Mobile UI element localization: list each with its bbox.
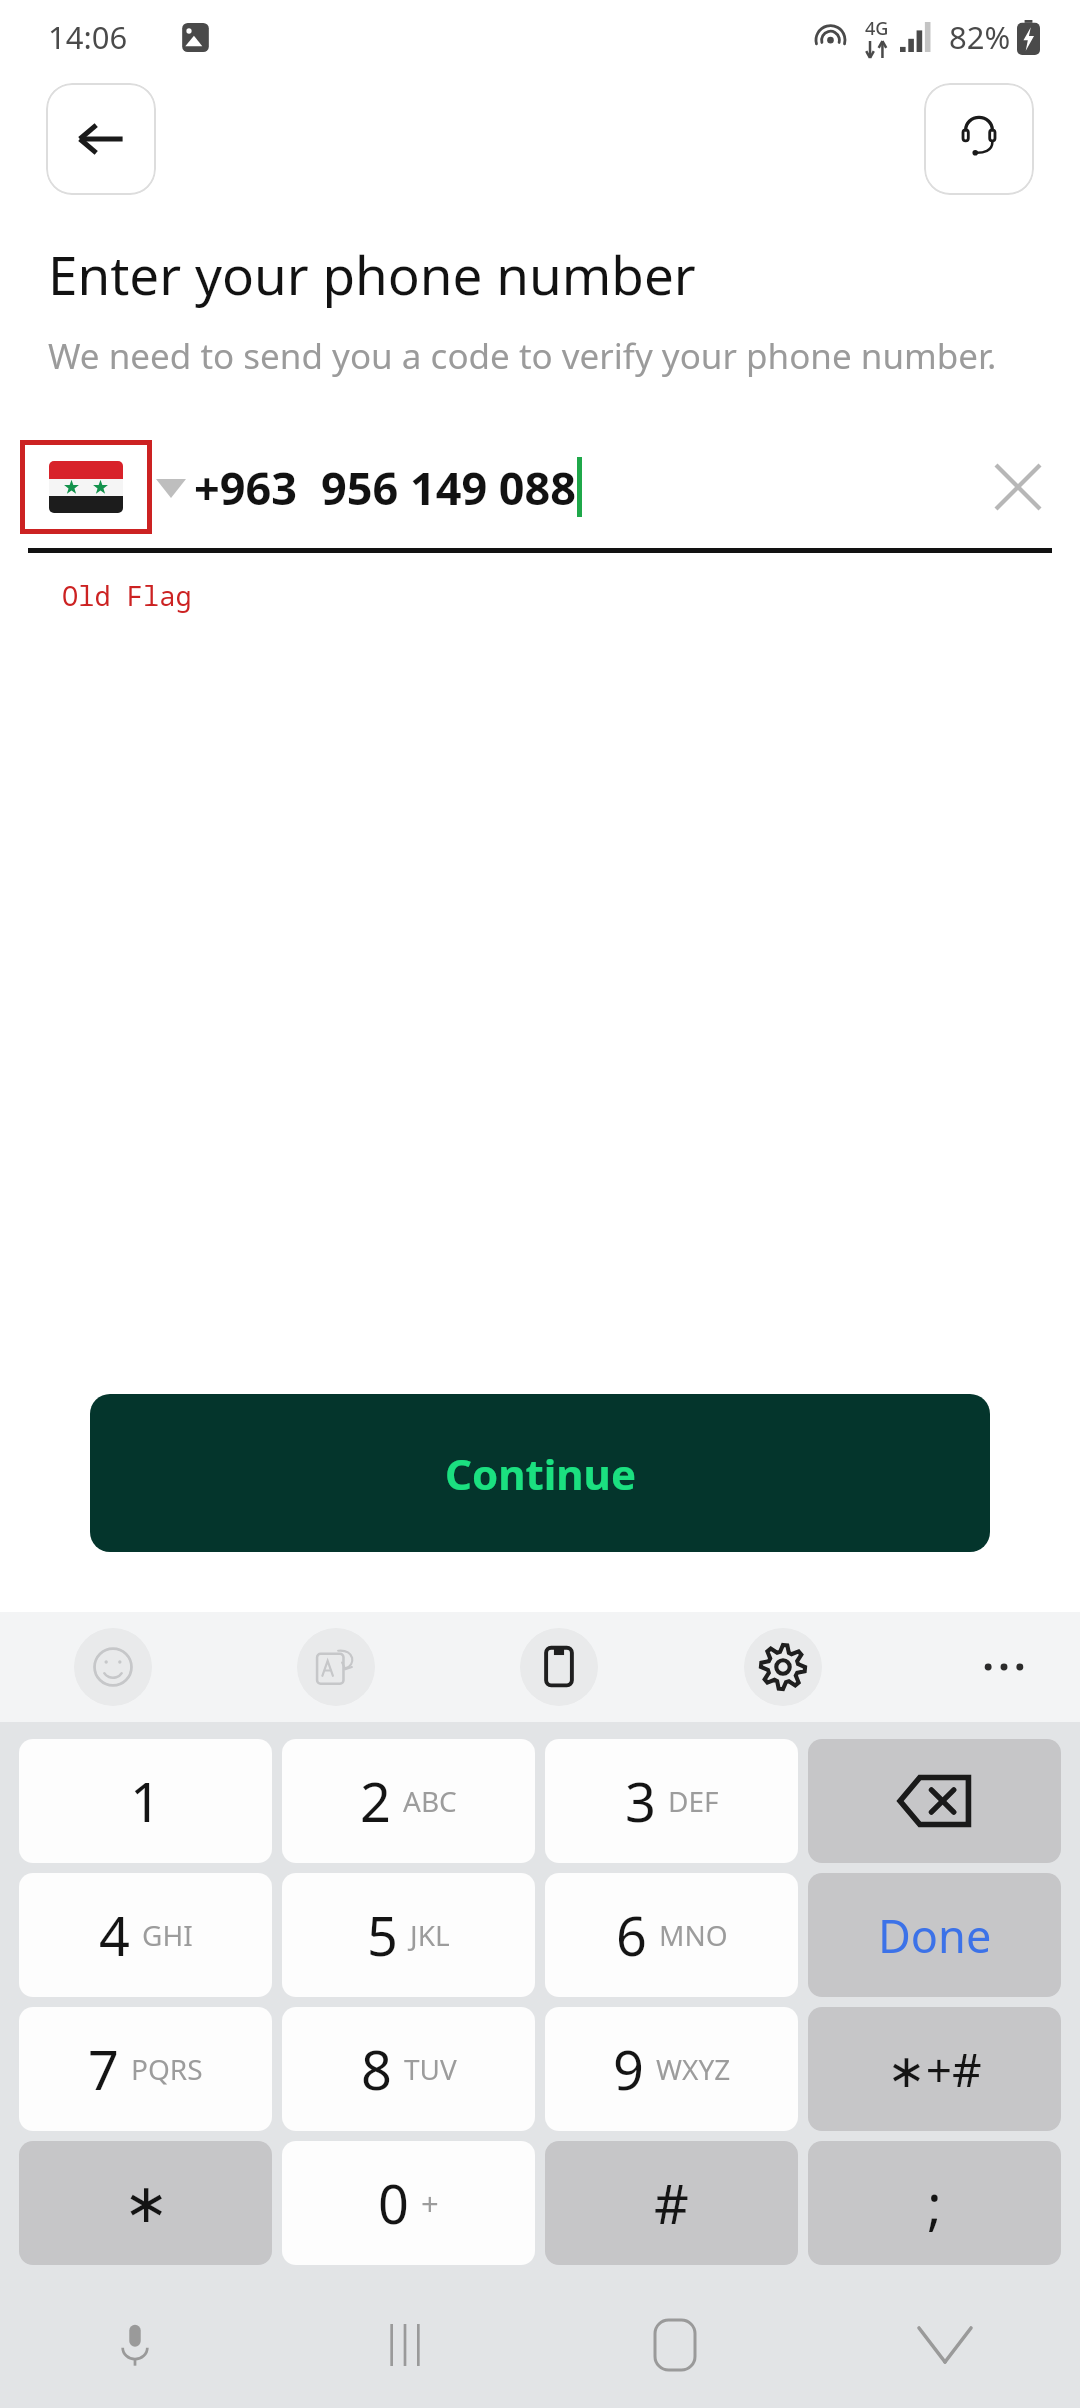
- button[interactable]: 7: [19, 2007, 272, 2131]
- button[interactable]: ;: [808, 2141, 1061, 2265]
- button[interactable]: Backspace: [808, 1739, 1061, 1863]
- button[interactable]: 1: [19, 1739, 272, 1863]
- button[interactable]: More options: [968, 1631, 1040, 1703]
- button[interactable]: 9: [545, 2007, 798, 2131]
- staticText: 9: [613, 2032, 644, 2106]
- staticText: Done: [878, 1905, 992, 1966]
- button[interactable]: ∗+#: [808, 2007, 1061, 2131]
- staticText: ∗+#: [887, 2038, 982, 2101]
- button[interactable]: 8: [282, 2007, 535, 2131]
- staticText: 82%: [949, 16, 1011, 58]
- button[interactable]: Hide keyboard: [810, 2282, 1080, 2408]
- button[interactable]: Back: [46, 83, 156, 195]
- staticText: PQRS: [131, 2050, 203, 2088]
- button[interactable]: 0: [282, 2141, 535, 2265]
- staticText: JKL: [410, 1916, 450, 1954]
- staticText: +963: [194, 457, 297, 518]
- staticText: 7: [88, 2032, 119, 2106]
- staticText: DEF: [668, 1782, 719, 1820]
- staticText: ABC: [403, 1782, 457, 1820]
- staticText: Enter your phone number: [48, 238, 696, 310]
- button[interactable]: Translate: [297, 1628, 375, 1706]
- staticText: 3: [625, 1764, 656, 1838]
- button[interactable]: Home: [540, 2282, 810, 2408]
- button[interactable]: 6: [545, 1873, 798, 1997]
- button[interactable]: Customer support: [924, 83, 1034, 195]
- staticText: Continue: [445, 1445, 636, 1502]
- staticText: 6: [616, 1898, 647, 1972]
- button[interactable]: Continue: [90, 1394, 990, 1552]
- staticText: 4G: [865, 16, 889, 41]
- button[interactable]: 4: [19, 1873, 272, 1997]
- staticText: 2: [360, 1764, 391, 1838]
- button[interactable]: Done: [808, 1873, 1061, 1997]
- button[interactable]: [20, 440, 152, 534]
- staticText: 956 149 088: [321, 457, 577, 518]
- staticText: MNO: [659, 1916, 728, 1954]
- staticText: We need to send you a code to verify you…: [48, 332, 997, 380]
- staticText: ∗: [123, 2172, 169, 2235]
- button[interactable]: 5: [282, 1873, 535, 1997]
- staticText: #: [654, 2166, 689, 2240]
- staticText: GHI: [142, 1916, 193, 1954]
- button[interactable]: Voice input: [0, 2282, 270, 2408]
- button[interactable]: 2: [282, 1739, 535, 1863]
- staticText: 0: [378, 2166, 409, 2240]
- staticText: Old Flag: [62, 577, 192, 614]
- button[interactable]: ∗: [19, 2141, 272, 2265]
- button[interactable]: 3: [545, 1739, 798, 1863]
- button[interactable]: Emoji: [74, 1628, 152, 1706]
- staticText: TUV: [404, 2050, 457, 2088]
- staticText: +: [421, 2182, 439, 2224]
- staticText: 1: [130, 1764, 161, 1838]
- button[interactable]: #: [545, 2141, 798, 2265]
- button[interactable]: Keyboard settings: [744, 1628, 822, 1706]
- button[interactable]: Recents: [270, 2282, 540, 2408]
- staticText: ;: [927, 2166, 942, 2240]
- staticText: 8: [361, 2032, 392, 2106]
- staticText: 5: [367, 1898, 398, 1972]
- staticText: 4: [99, 1898, 130, 1972]
- button[interactable]: Clear: [976, 445, 1060, 529]
- staticText: WXYZ: [656, 2050, 731, 2088]
- staticText: 14:06: [48, 16, 128, 58]
- button[interactable]: Clipboard: [520, 1628, 598, 1706]
